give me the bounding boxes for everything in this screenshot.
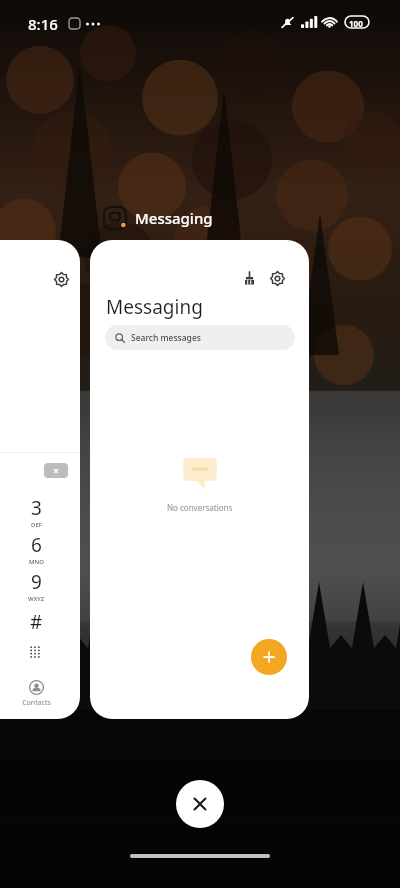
button[interactable]: Contacts — [10, 680, 62, 708]
button[interactable]: Clean up — [90, 240, 309, 719]
staticText: No conversations — [167, 502, 233, 513]
staticText: 9 — [31, 569, 42, 595]
staticText: DEF — [31, 521, 42, 529]
staticText: Messaging — [135, 208, 213, 228]
button[interactable]: 3 — [10, 495, 62, 529]
staticText: # — [30, 609, 43, 635]
button[interactable]: Settings — [48, 266, 74, 292]
staticText: 3 — [31, 495, 42, 521]
staticText: 6 — [31, 532, 42, 558]
button[interactable]: Backspace — [44, 463, 68, 478]
button[interactable]: Keypad — [23, 640, 47, 664]
staticText: Contacts — [22, 698, 51, 708]
button[interactable]: 6 — [10, 532, 62, 566]
staticText: 8:16 — [28, 14, 58, 34]
button[interactable]: New conversation — [251, 639, 287, 675]
button[interactable]: Settings — [263, 264, 291, 292]
button[interactable]: 9 — [10, 569, 62, 603]
button[interactable]: Search messages — [105, 325, 295, 350]
staticText: MNO — [29, 558, 44, 566]
staticText: 100 — [349, 18, 363, 29]
staticText: Search messages — [131, 332, 201, 344]
button[interactable]: Close all — [176, 780, 224, 828]
button[interactable]: Messaging — [104, 207, 213, 229]
button[interactable]: # — [10, 609, 62, 635]
staticText: WXYZ — [28, 595, 45, 603]
button[interactable]: Settings — [0, 240, 80, 719]
button[interactable]: Clean up — [235, 264, 263, 292]
staticText: Messaging — [106, 294, 203, 320]
